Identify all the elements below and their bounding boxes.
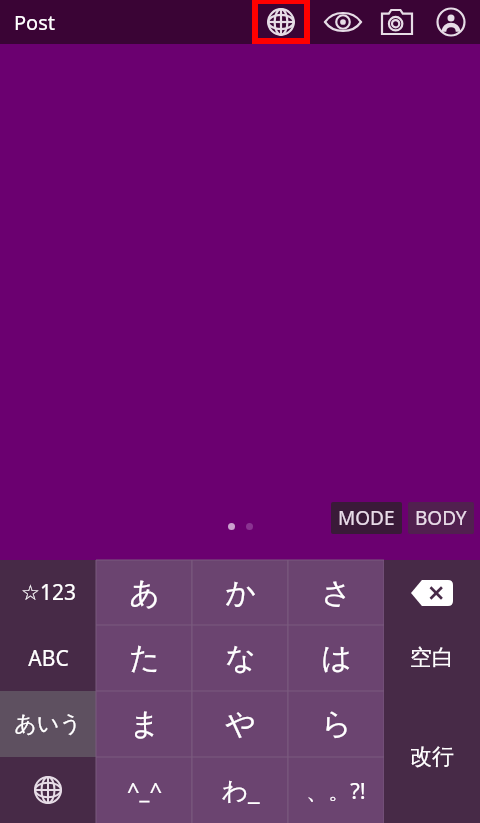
button[interactable]: MODE	[331, 502, 402, 534]
staticText: ら	[321, 705, 352, 743]
button[interactable]: Switch keyboard	[0, 757, 96, 823]
staticText: MODE	[338, 505, 395, 531]
button[interactable]: 空白	[384, 625, 480, 691]
staticText: 空白	[410, 644, 454, 672]
button[interactable]: 改行	[384, 691, 480, 823]
button[interactable]: や	[192, 691, 288, 757]
staticText: 、。?!	[306, 775, 366, 805]
staticText: ま	[129, 705, 160, 743]
staticText: Post	[14, 9, 55, 36]
button[interactable]: Profile	[428, 0, 474, 44]
button[interactable]: 、。?!	[288, 757, 384, 823]
staticText: か	[225, 574, 256, 612]
staticText: あいう	[14, 710, 82, 738]
staticText: ABC	[28, 644, 69, 673]
button[interactable]: わ_	[192, 757, 288, 823]
button[interactable]: た	[96, 625, 192, 691]
staticText: BODY	[415, 505, 467, 531]
button[interactable]: ま	[96, 691, 192, 757]
button[interactable]: Backspace	[384, 560, 480, 625]
button[interactable]: あいう	[0, 691, 96, 757]
button[interactable]: ^_^	[96, 757, 192, 823]
button[interactable]: Language	[254, 0, 308, 44]
button[interactable]: ☆123	[0, 560, 96, 625]
staticText: な	[225, 639, 256, 677]
staticText: わ_	[221, 772, 260, 808]
button[interactable]: Camera	[374, 0, 420, 44]
button[interactable]: は	[288, 625, 384, 691]
staticText: ☆123	[21, 578, 76, 607]
button[interactable]: ABC	[0, 625, 96, 691]
staticText: ^_^	[127, 775, 162, 805]
button[interactable]: な	[192, 625, 288, 691]
button[interactable]: ら	[288, 691, 384, 757]
button[interactable]: か	[192, 560, 288, 625]
staticText: は	[321, 639, 352, 677]
button[interactable]: あ	[96, 560, 192, 625]
staticText: 改行	[410, 743, 454, 771]
staticText: あ	[129, 574, 160, 612]
staticText: た	[129, 639, 160, 677]
staticText: さ	[321, 574, 352, 612]
button[interactable]: BODY	[408, 502, 474, 534]
staticText: や	[225, 705, 256, 743]
button[interactable]: さ	[288, 560, 384, 625]
button[interactable]: Preview	[320, 0, 366, 44]
